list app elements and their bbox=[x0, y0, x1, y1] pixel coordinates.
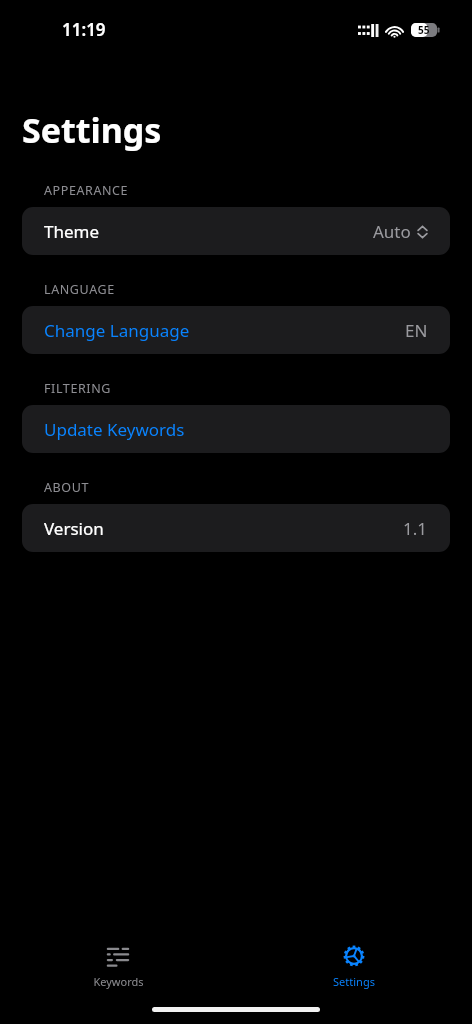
staticText: FILTERING bbox=[44, 380, 111, 397]
button[interactable]: Keywords bbox=[0, 944, 236, 989]
button[interactable]: Change Language bbox=[22, 306, 450, 354]
staticText: Change Language bbox=[44, 319, 190, 342]
staticText: Settings bbox=[22, 107, 162, 153]
staticText: 55 bbox=[418, 23, 430, 37]
button[interactable]: Update Keywords bbox=[22, 405, 450, 453]
staticText: 1.1 bbox=[403, 517, 428, 540]
staticText: APPEARANCE bbox=[44, 182, 129, 199]
button[interactable]: Settings bbox=[236, 944, 472, 989]
staticText: Theme bbox=[44, 220, 100, 243]
button[interactable]: Theme bbox=[22, 207, 450, 255]
button[interactable]: Version bbox=[22, 504, 450, 552]
staticText: EN bbox=[405, 319, 428, 342]
staticText: 11:19 bbox=[62, 18, 106, 41]
staticText: Auto bbox=[373, 220, 411, 243]
staticText: LANGUAGE bbox=[44, 281, 115, 298]
staticText: Keywords bbox=[93, 974, 144, 989]
staticText: ABOUT bbox=[44, 479, 89, 496]
staticText: Settings bbox=[333, 974, 375, 989]
staticText: Update Keywords bbox=[44, 418, 185, 441]
staticText: Version bbox=[44, 517, 104, 540]
